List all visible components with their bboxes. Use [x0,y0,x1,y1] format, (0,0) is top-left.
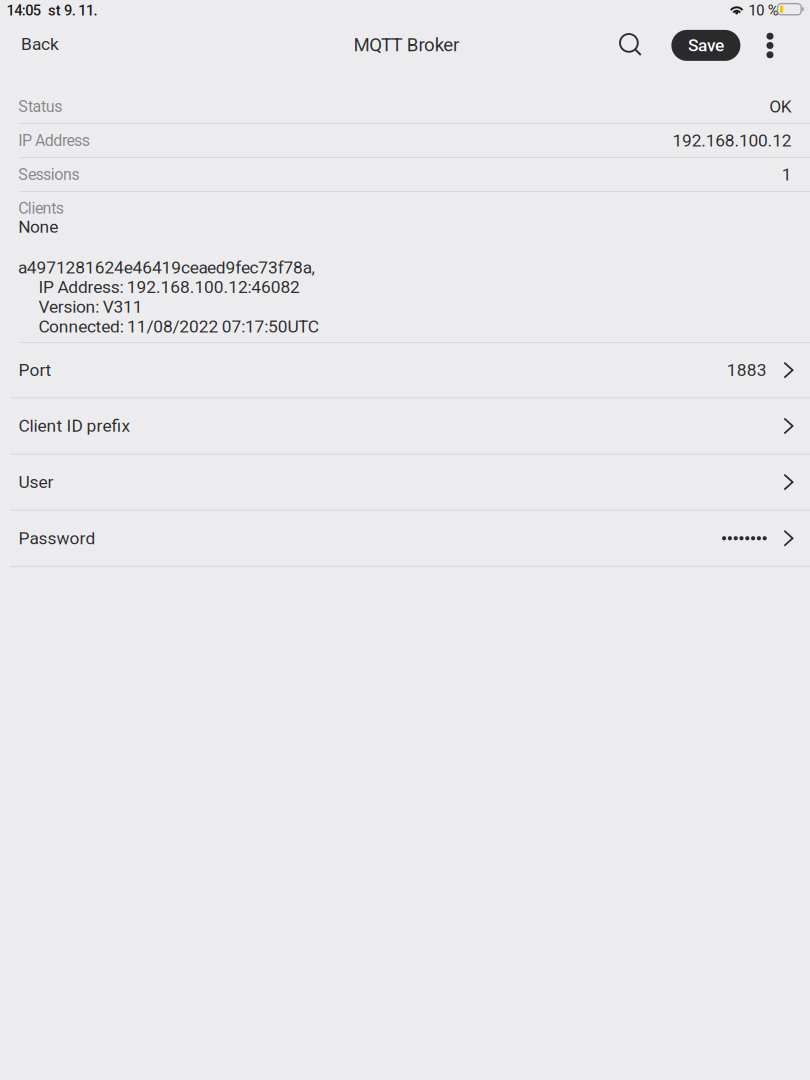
staticText: None [18,217,58,237]
staticText: User [18,472,53,492]
staticText: 1883 [727,360,767,380]
staticText: 14:05 [7,2,41,19]
staticText: Port [18,360,51,380]
staticText: 10 % [748,2,779,19]
button[interactable]: Password [0,511,810,566]
staticText: a4971281624e46419ceaed9fec73f78a, [18,257,314,278]
staticText: Save [688,35,724,55]
button[interactable]: Search [607,20,655,70]
staticText: MQTT Broker [354,34,459,56]
staticText: Password [18,528,95,548]
button[interactable]: Back [0,24,83,64]
staticText: IP Address [18,131,90,150]
staticText: st 9. 11. [48,2,98,19]
staticText: Version: V311 [38,297,143,317]
button[interactable]: More options [754,20,786,71]
staticText: Back [21,34,59,54]
button[interactable]: Client ID prefix [0,398,810,454]
staticText: 1 [782,164,792,185]
button[interactable]: Port [0,343,810,397]
staticText: OK [769,96,792,117]
staticText: Status [18,97,62,116]
staticText: Sessions [18,165,79,184]
staticText: Client ID prefix [18,416,130,436]
staticText: IP Address: 192.168.100.12:46082 [38,277,300,297]
staticText: Clients [18,199,64,218]
button[interactable]: User [0,455,810,510]
staticText: 192.168.100.12 [673,130,792,151]
staticText: Connected: 11/08/2022 07:17:50UTC [38,316,319,337]
button[interactable]: Save [671,30,740,61]
